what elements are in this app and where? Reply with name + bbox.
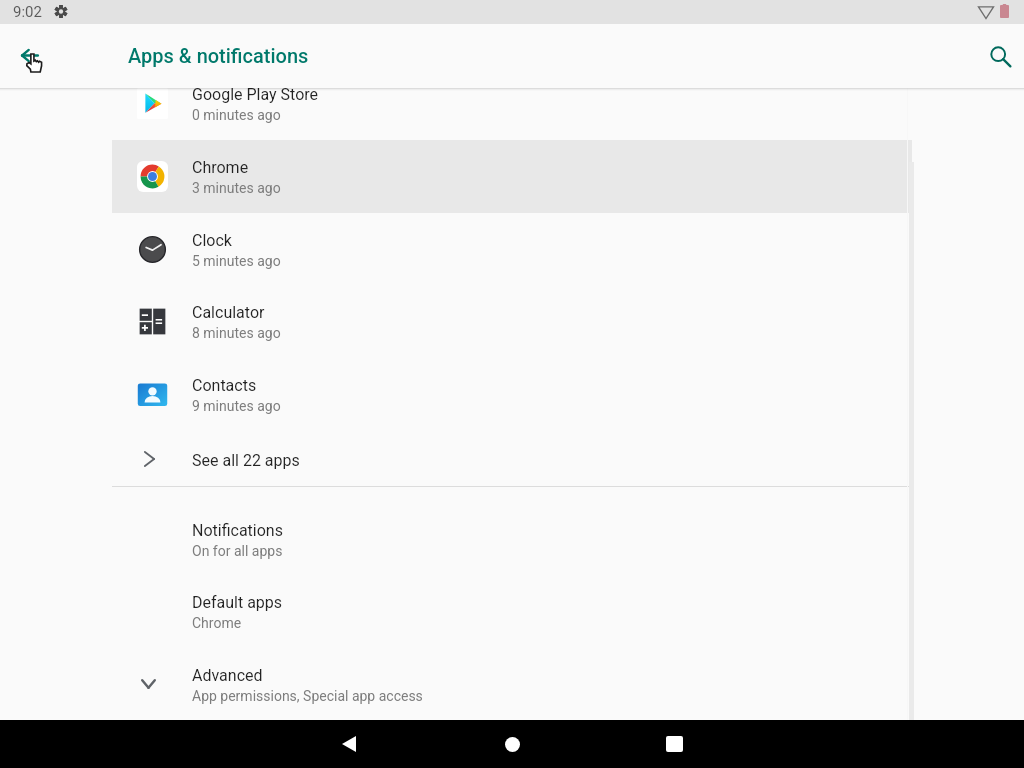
staticText: Chrome (192, 615, 242, 631)
staticText: Default apps (192, 593, 283, 612)
button[interactable]: Advanced (112, 648, 912, 721)
staticText: 9:02 (13, 3, 42, 21)
staticText: Contacts (192, 376, 257, 395)
staticText: Apps & notifications (128, 44, 309, 67)
button[interactable]: See all 22 apps (112, 431, 912, 504)
button[interactable]: Back (5, 31, 53, 79)
staticText: Calculator (192, 303, 265, 322)
button[interactable]: Clock (112, 213, 912, 286)
staticText: 9 minutes ago (192, 398, 281, 414)
button[interactable]: Google Play Store (112, 67, 912, 140)
staticText: 0 minutes ago (192, 107, 281, 123)
button[interactable]: Default apps (112, 575, 912, 648)
button[interactable]: Chrome (112, 140, 912, 213)
staticText: On for all apps (192, 543, 283, 559)
button[interactable]: Recent apps (626, 720, 722, 768)
staticText: Google Play Store (192, 85, 319, 104)
button[interactable]: Calculator (112, 285, 912, 358)
staticText: See all 22 apps (192, 451, 300, 470)
staticText: Advanced (192, 666, 263, 685)
staticText: 5 minutes ago (192, 253, 281, 269)
button[interactable]: Notifications (112, 503, 912, 576)
staticText: Notifications (192, 521, 283, 540)
staticText: 8 minutes ago (192, 325, 281, 341)
button[interactable]: Contacts (112, 358, 912, 431)
staticText: 3 minutes ago (192, 180, 281, 196)
button[interactable]: Search (976, 32, 1024, 80)
staticText: Clock (192, 231, 232, 250)
button[interactable]: Back (301, 720, 397, 768)
staticText: Chrome (192, 158, 249, 177)
button[interactable]: Home (464, 720, 560, 768)
staticText: App permissions, Special app access (192, 688, 423, 704)
